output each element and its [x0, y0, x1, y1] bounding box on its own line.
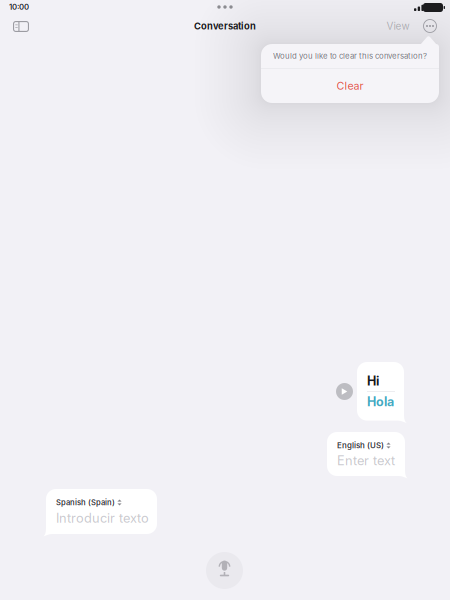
staticText: Introducir texto	[56, 510, 149, 526]
button[interactable]: Record	[0, 0, 243, 589]
button[interactable]: Show Sidebar	[0, 0, 29, 32]
button[interactable]: Play translation	[0, 0, 353, 400]
button[interactable]: More options	[0, 0, 442, 38]
staticText: Conversation	[194, 20, 256, 32]
staticText: 10:00	[9, 2, 29, 12]
staticText: Spanish (Spain)	[56, 498, 115, 507]
staticText: Enter text	[337, 453, 395, 468]
staticText: Hi	[367, 373, 379, 389]
button[interactable]: View	[0, 0, 413, 33]
button[interactable]: Clear	[261, 68, 439, 103]
staticText: English (US)	[337, 441, 384, 450]
staticText: Clear	[336, 79, 363, 92]
staticText: View	[386, 20, 409, 32]
staticText: Would you like to clear this conversatio…	[273, 51, 427, 61]
staticText: Hola	[367, 394, 394, 409]
